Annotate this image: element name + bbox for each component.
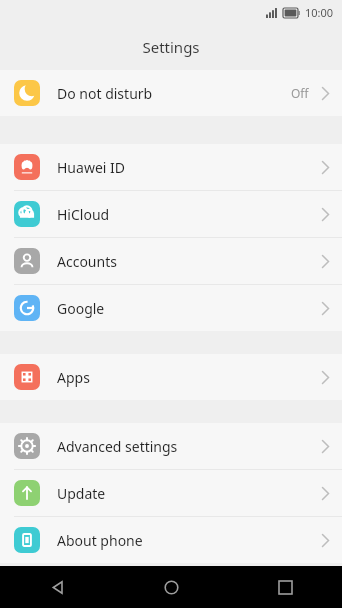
- staticText: 10:00: [305, 5, 334, 20]
- button[interactable]: Advanced settings: [0, 423, 342, 469]
- staticText: Update: [57, 484, 106, 503]
- button[interactable]: Home: [114, 566, 228, 608]
- button[interactable]: Huawei ID: [0, 144, 342, 190]
- staticText: Apps: [57, 368, 90, 387]
- button[interactable]: About phone: [0, 517, 342, 563]
- button[interactable]: Do not disturb: [0, 70, 342, 116]
- staticText: Off: [291, 85, 309, 101]
- button[interactable]: Accounts: [0, 238, 342, 284]
- staticText: Huawei ID: [57, 158, 125, 177]
- staticText: Advanced settings: [57, 437, 178, 456]
- button[interactable]: HiCloud: [0, 191, 342, 237]
- staticText: About phone: [57, 531, 143, 550]
- staticText: Google: [57, 299, 105, 318]
- button[interactable]: Recents: [228, 566, 342, 608]
- staticText: Accounts: [57, 252, 117, 271]
- button[interactable]: Back: [0, 566, 114, 608]
- staticText: Settings: [142, 37, 200, 57]
- button[interactable]: Update: [0, 470, 342, 516]
- button[interactable]: Google: [0, 285, 342, 331]
- button[interactable]: Apps: [0, 354, 342, 400]
- staticText: HiCloud: [57, 205, 110, 224]
- staticText: Do not disturb: [57, 84, 153, 103]
